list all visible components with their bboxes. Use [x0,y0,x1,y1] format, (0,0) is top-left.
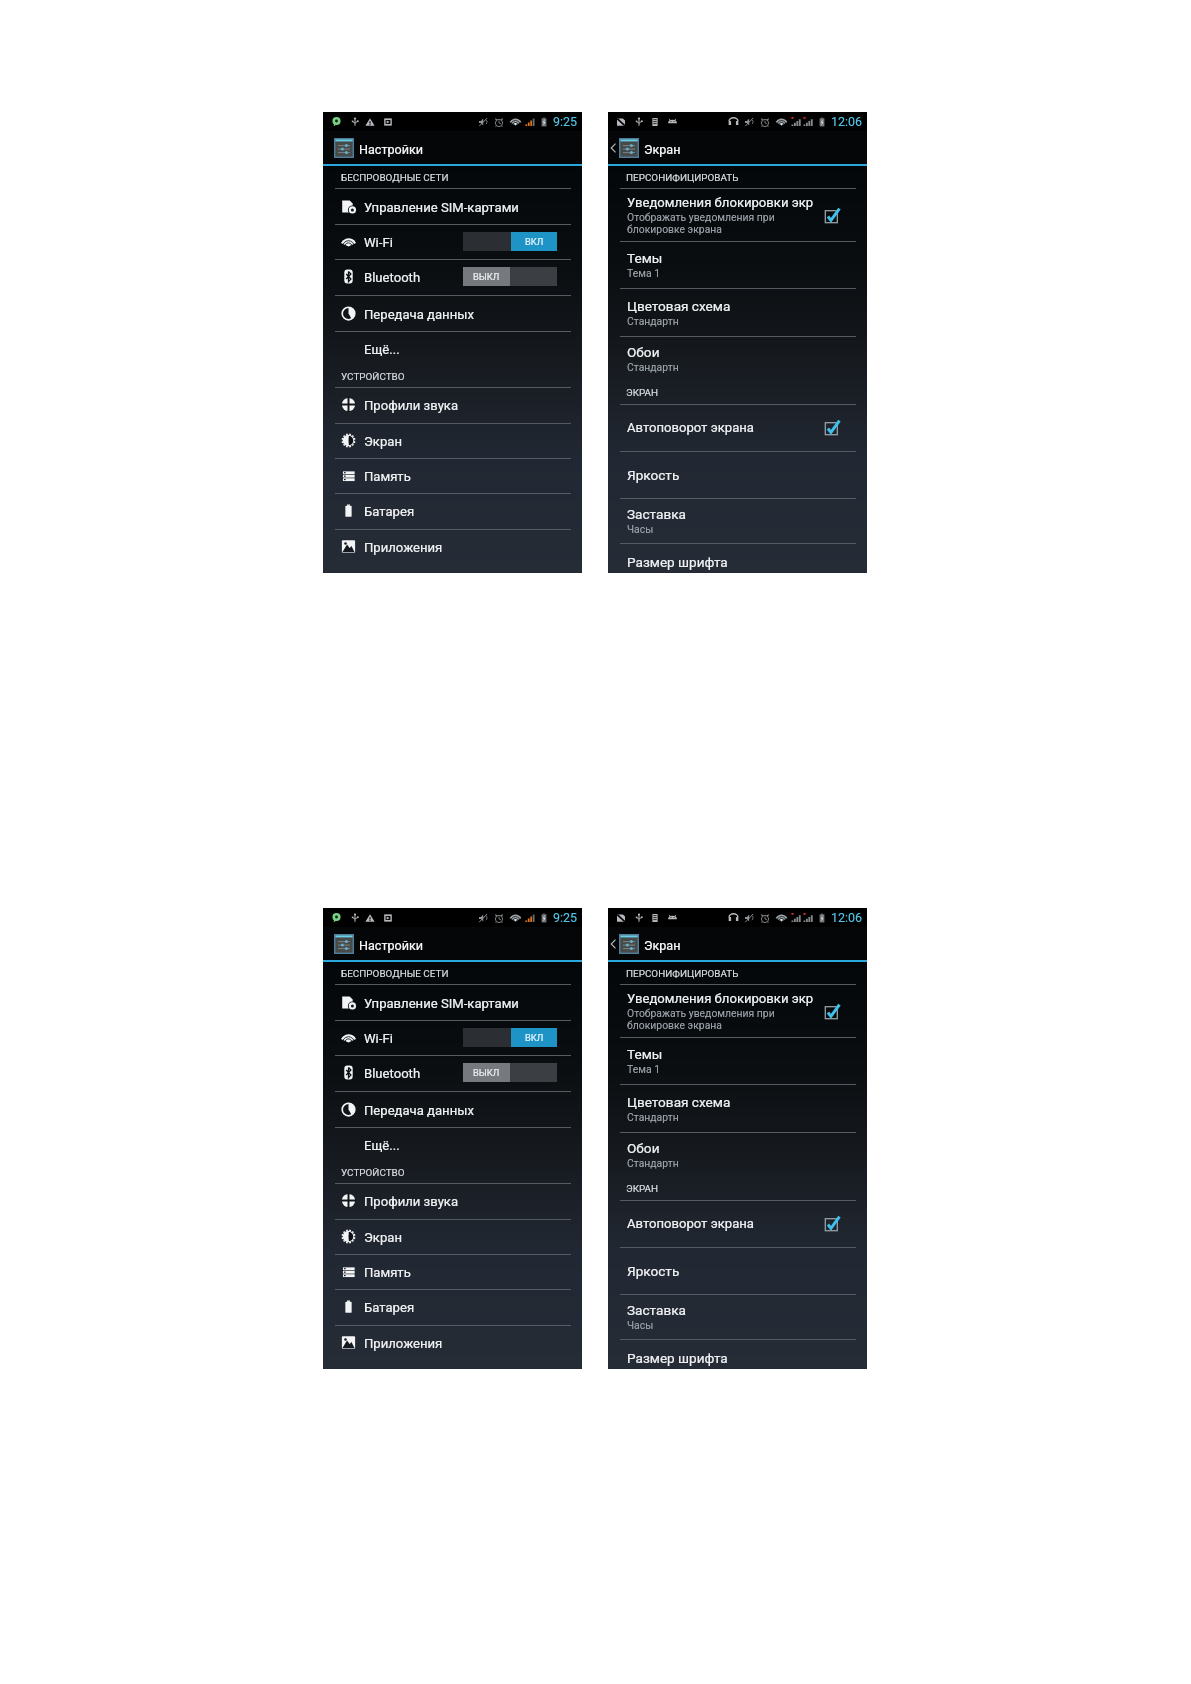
button[interactable]: Цветовая схема [608,1084,867,1132]
button[interactable]: Экран [323,423,582,458]
button[interactable]: Цветовая схема [608,288,867,336]
staticText: Стандартн [627,1111,679,1123]
staticText: Часы [627,1319,654,1331]
staticText: Темы [627,1046,663,1062]
button[interactable]: Toggle setting [825,1216,840,1231]
button[interactable]: Передача данных [323,1091,582,1128]
button[interactable]: Темы [608,241,867,288]
staticText: Темы [627,250,663,266]
staticText: Wi-Fi [364,1031,393,1046]
staticText: Автоповорот экрана [627,420,754,435]
staticText: Настройки [359,142,424,157]
staticText: Bluetooth [364,270,421,285]
button[interactable]: Автоповорот экрана [608,404,867,451]
staticText: Экран [364,434,402,449]
button[interactable]: Передача данных [323,295,582,332]
button[interactable]: Settings [334,934,354,954]
staticText: Память [364,469,411,484]
button[interactable]: ВКЛ [463,1028,557,1047]
button[interactable]: Экран [323,1219,582,1254]
staticText: ЭКРАН [626,387,659,399]
staticText: Стандартн [627,1157,679,1169]
button[interactable]: Профили звука [323,1183,582,1218]
staticText: Яркость [627,467,680,483]
staticText: Экран [644,938,681,953]
button[interactable]: Профили звука [323,387,582,422]
staticText: Ещё... [364,1138,400,1153]
staticText: 12:06 [831,910,863,925]
button[interactable]: Заставка [608,1294,867,1339]
staticText: Батарея [364,1300,415,1315]
staticText: Цветовая схема [627,298,731,314]
staticText: Управление SIM-картами [364,200,519,215]
button[interactable]: Яркость [608,1247,867,1294]
button[interactable]: Toggle setting [825,208,840,223]
staticText: Приложения [364,540,443,555]
staticText: Тема 1 [627,267,660,279]
button[interactable]: Управление SIM-картами [323,984,582,1020]
staticText: Тема 1 [627,1063,660,1075]
button[interactable]: ВЫКЛ [463,1063,557,1082]
staticText: Стандартн [627,361,679,373]
button[interactable]: Back [608,934,618,954]
button[interactable]: Приложения [323,1325,582,1360]
button[interactable]: Settings [334,138,354,158]
button[interactable]: Размер шрифта [608,543,867,573]
staticText: Размер шрифта [627,554,728,570]
staticText: Приложения [364,1336,443,1351]
staticText: Заставка [627,506,686,522]
staticText: БЕСПРОВОДНЫЕ СЕТИ [341,968,449,980]
staticText: Экран [644,142,681,157]
staticText: 12:06 [831,114,863,129]
button[interactable]: Батарея [323,1289,582,1324]
staticText: ЭКРАН [626,1183,659,1195]
button[interactable]: Память [323,1254,582,1289]
staticText: ВКЛ [525,236,544,247]
staticText: Автоповорот экрана [627,1216,754,1231]
staticText: ПЕРСОНИФИЦИРОВАТЬ [626,172,739,184]
button[interactable]: Toggle setting [825,1004,840,1019]
button[interactable]: Яркость [608,451,867,498]
staticText: Профили звука [364,1194,459,1209]
staticText: ВЫКЛ [473,1067,500,1078]
button[interactable]: Wi-Fi [323,224,582,259]
button[interactable]: Управление SIM-картами [323,188,582,224]
staticText: 9:25 [553,910,578,925]
button[interactable]: Обои [608,1132,867,1177]
button[interactable]: Ещё... [323,1127,582,1162]
staticText: Уведомления блокировки экр [627,991,814,1006]
staticText: ВЫКЛ [473,271,500,282]
staticText: Часы [627,523,654,535]
button[interactable]: Заставка [608,498,867,543]
button[interactable]: Bluetooth [323,1055,582,1090]
button[interactable]: Toggle setting [825,420,840,435]
button[interactable]: Bluetooth [323,259,582,294]
button[interactable]: Settings [619,934,639,954]
staticText: ВКЛ [525,1032,544,1043]
button[interactable]: Темы [608,1037,867,1084]
button[interactable]: ВЫКЛ [463,267,557,286]
button[interactable]: Back [608,138,618,158]
staticText: УСТРОЙСТВО [341,371,405,383]
button[interactable]: Приложения [323,529,582,564]
button[interactable]: Settings [619,138,639,158]
staticText: Ещё... [364,342,400,357]
button[interactable]: Автоповорот экрана [608,1200,867,1247]
button[interactable]: Wi-Fi [323,1020,582,1055]
staticText: Настройки [359,938,424,953]
staticText: Wi-Fi [364,235,393,250]
button[interactable]: Размер шрифта [608,1339,867,1369]
button[interactable]: Уведомления блокировки экр [608,188,867,242]
staticText: Отображать уведомления при блокировке эк… [627,1007,775,1031]
button[interactable]: Батарея [323,493,582,528]
staticText: Память [364,1265,411,1280]
staticText: УСТРОЙСТВО [341,1167,405,1179]
button[interactable]: Уведомления блокировки экр [608,984,867,1038]
staticText: Батарея [364,504,415,519]
button[interactable]: Ещё... [323,331,582,366]
button[interactable]: ВКЛ [463,232,557,251]
staticText: Bluetooth [364,1066,421,1081]
button[interactable]: Обои [608,336,867,381]
button[interactable]: Память [323,458,582,493]
staticText: Обои [627,344,660,360]
